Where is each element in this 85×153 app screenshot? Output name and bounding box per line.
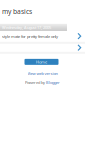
staticText: style mate for pretty female only: [2, 34, 58, 39]
staticText: View web version: [27, 71, 57, 76]
staticText: Powered by: [25, 80, 45, 85]
button[interactable]: Blogger: [46, 80, 60, 85]
button[interactable]: View web version: [0, 71, 85, 76]
button[interactable]: Home: [24, 59, 58, 65]
button[interactable]: Older posts: [0, 44, 85, 52]
button[interactable]: style mate for pretty female only: [0, 31, 85, 42]
staticText: Home: [36, 59, 47, 64]
staticText: Blogger: [46, 80, 60, 85]
staticText: my basics: [2, 7, 32, 16]
staticText: Wednesday, August 17, 2005: [2, 25, 51, 30]
